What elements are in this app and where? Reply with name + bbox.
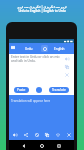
button[interactable]: Translate xyxy=(49,87,69,93)
button[interactable]: Speak xyxy=(63,55,70,63)
button[interactable]: Copy xyxy=(43,131,50,138)
button[interactable]: Copy xyxy=(63,63,70,71)
button[interactable]: Mute xyxy=(33,131,40,138)
button[interactable]: Speak xyxy=(11,131,18,138)
staticText: اردو سے انگریزی | انگریزی سے اردو xyxy=(17,5,67,9)
button[interactable]: Menu xyxy=(9,44,16,51)
staticText: Translation will appear here xyxy=(11,99,51,103)
button[interactable]: Clear xyxy=(65,131,72,138)
button[interactable]: Paste xyxy=(14,87,29,93)
button[interactable]: English xyxy=(51,43,67,54)
button[interactable]: Microphone xyxy=(36,87,42,93)
button[interactable]: Favorite xyxy=(54,131,61,138)
other: Recents xyxy=(57,144,61,148)
staticText: Enter text in Urdu or click on mic and t… xyxy=(11,55,60,63)
other: Back xyxy=(22,144,26,148)
staticText: Paste xyxy=(17,88,26,92)
button[interactable]: Urdu xyxy=(22,43,35,54)
other: Home xyxy=(40,144,44,148)
button[interactable]: Clear xyxy=(63,71,70,79)
button[interactable]: Share xyxy=(22,131,29,138)
staticText: Translate xyxy=(52,88,66,92)
staticText: English xyxy=(54,47,65,51)
button[interactable]: Swap languages xyxy=(41,45,48,52)
staticText: Urdu xyxy=(25,47,33,51)
staticText: Urdu to English | English to Urdu xyxy=(18,9,66,13)
